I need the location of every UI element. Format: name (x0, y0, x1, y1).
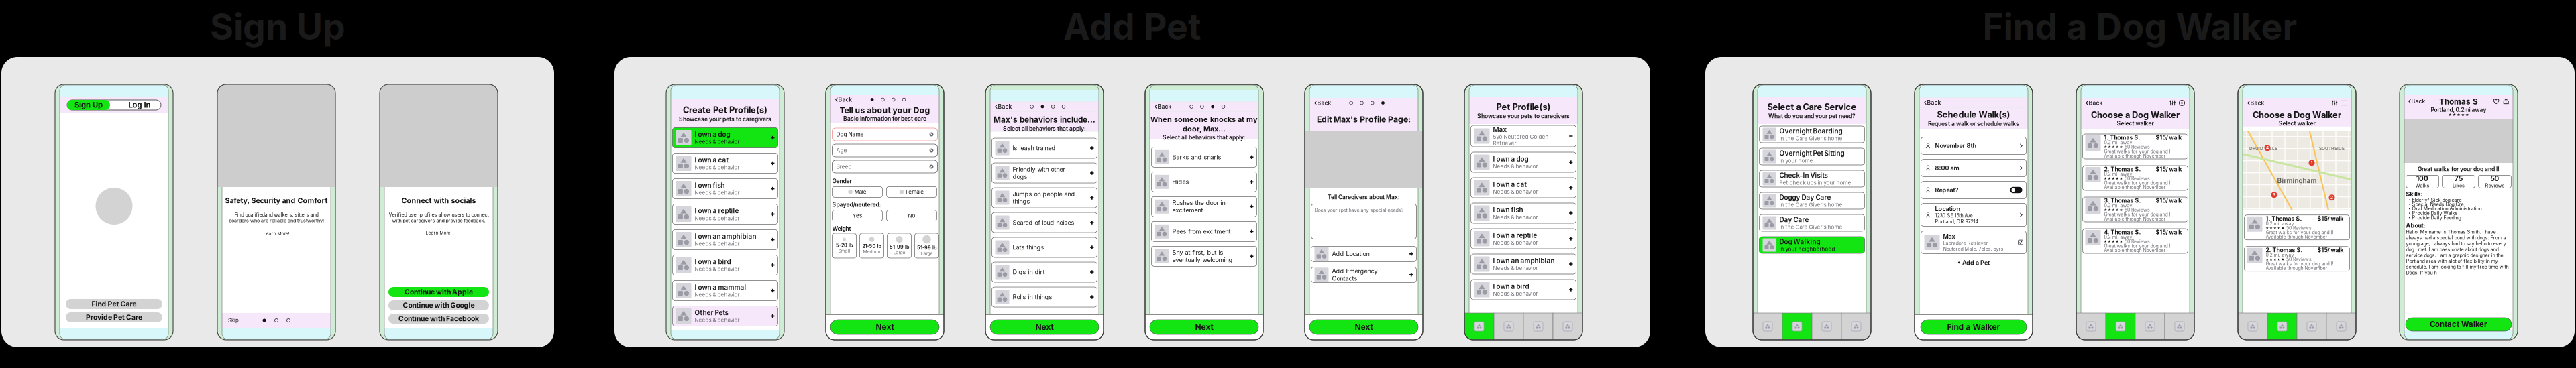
button[interactable]: Location (1921, 203, 2026, 226)
button[interactable]: November 8th (1921, 137, 2026, 155)
button[interactable]: Overnight Boarding (1759, 126, 1865, 143)
button[interactable]: Skip (228, 316, 244, 324)
button[interactable]: 3. Thomas S. (2083, 197, 2188, 222)
button[interactable]: 21-50 lb (860, 233, 884, 258)
button[interactable]: Tab 4 (1841, 313, 1871, 340)
button[interactable]: Filters (2332, 100, 2337, 106)
button[interactable]: Other Pets (673, 306, 778, 326)
button[interactable]: 1. Thomas S. (2083, 134, 2188, 159)
button[interactable]: Find a Walker (1921, 320, 2027, 334)
button[interactable]: I own a reptile (1471, 229, 1576, 249)
button[interactable]: Overnight Pet Sitting (1759, 148, 1865, 165)
button[interactable]: Eats things (992, 237, 1097, 257)
button[interactable]: Map view (2179, 100, 2185, 106)
button[interactable]: Find Pet Care (66, 299, 162, 309)
button[interactable]: 8:00 am (1921, 159, 2026, 177)
button[interactable]: I own a dog (673, 128, 778, 148)
button[interactable]: 5-20 lb (832, 233, 856, 258)
button[interactable]: Female (887, 187, 937, 197)
button[interactable]: Tab 2 (1494, 313, 1523, 340)
button[interactable]: Filters (2170, 100, 2176, 106)
button[interactable]: List view (2341, 100, 2347, 106)
button[interactable]: 2. Thomas S. (2244, 247, 2350, 271)
button[interactable]: Next (990, 320, 1099, 334)
button[interactable]: Tab 3 (2297, 313, 2326, 340)
button[interactable]: Back (1924, 99, 1941, 106)
button[interactable]: Back (995, 103, 1012, 110)
button[interactable]: Back (2408, 98, 2425, 105)
button[interactable]: Hides (1151, 172, 1257, 192)
button[interactable]: Tab 2 (2267, 313, 2297, 340)
button[interactable]: Tab 4 (2165, 313, 2194, 340)
button[interactable]: Continue with Google (388, 300, 489, 310)
button[interactable]: Back (835, 96, 852, 103)
button[interactable]: Doggy Day Care (1759, 192, 1865, 209)
button[interactable]: 51-99 lb (915, 233, 939, 258)
button[interactable]: Next (1150, 320, 1258, 334)
button[interactable]: 1. Thomas S. (2244, 215, 2350, 240)
button[interactable]: I own a dog (1471, 152, 1576, 172)
button[interactable]: Day Care (1759, 214, 1865, 231)
button[interactable]: Jumps on people and (992, 188, 1097, 208)
button[interactable]: Add Location (1311, 246, 1416, 262)
button[interactable]: Dog Walking (1759, 237, 1865, 253)
button[interactable]: Tab 4 (2326, 313, 2356, 340)
button[interactable]: Tab 4 (1553, 313, 1582, 340)
button[interactable]: Breed (832, 160, 937, 173)
button[interactable]: Contact Walker (2406, 318, 2512, 331)
button[interactable]: I own fish (673, 179, 778, 199)
button[interactable]: I own a mammal (673, 281, 778, 301)
button[interactable]: I own an amphibian (673, 230, 778, 250)
button[interactable]: Add Emergency (1311, 267, 1416, 282)
button[interactable]: 4. Thomas S. (2083, 229, 2188, 253)
button[interactable]: Share (2503, 98, 2509, 104)
button[interactable]: Tab 3 (2135, 313, 2165, 340)
button[interactable]: Age (832, 144, 937, 157)
button[interactable]: Sign Up (67, 100, 110, 110)
button[interactable]: Tab 1 (1464, 313, 1494, 340)
button[interactable]: Tab 3 (1523, 313, 1553, 340)
button[interactable]: Back (2247, 99, 2264, 107)
button[interactable]: Continue with Apple (388, 287, 489, 297)
button[interactable]: I own fish (1471, 203, 1576, 223)
button[interactable]: Max (1471, 125, 1576, 147)
button[interactable]: Learn More! (426, 223, 452, 236)
button[interactable]: I own a reptile (673, 204, 778, 224)
button[interactable]: Check-In Visits (1759, 170, 1865, 187)
button[interactable]: 2. Thomas S. (2083, 166, 2188, 190)
button[interactable]: Friendly with other (992, 163, 1097, 183)
button[interactable]: Back (1155, 103, 1172, 110)
button[interactable]: Next (830, 320, 939, 334)
button[interactable]: Tab 2 (2106, 313, 2135, 340)
button[interactable]: Tab 3 (1812, 313, 1841, 340)
button[interactable]: I own a bird (673, 255, 778, 275)
button[interactable]: Digs in dirt (992, 262, 1097, 282)
button[interactable]: Dog Name (832, 128, 937, 141)
button[interactable]: Repeat? (1921, 181, 2026, 199)
button[interactable]: Provide Pet Care (66, 312, 162, 322)
button[interactable]: Is leash trained (992, 138, 1097, 158)
button[interactable]: Next (1309, 320, 1418, 334)
button[interactable]: Shy at first, but is (1151, 246, 1257, 266)
button[interactable]: Yes (832, 210, 882, 221)
button[interactable]: Tab 2 (1782, 313, 1812, 340)
button[interactable]: Tab 1 (2238, 313, 2267, 340)
button[interactable]: Log In (118, 100, 161, 110)
button[interactable]: Back (2086, 99, 2103, 107)
button[interactable]: I own an amphibian (1471, 254, 1576, 274)
button[interactable]: Male (832, 187, 882, 197)
button[interactable]: Learn More! (263, 223, 289, 236)
button[interactable]: 51-99 lb (887, 233, 911, 258)
button[interactable]: Barks and snarls (1151, 147, 1257, 167)
button[interactable]: Favorite (2493, 98, 2499, 104)
button[interactable]: Pees from excitment (1151, 221, 1257, 242)
button[interactable]: Tab 1 (2076, 313, 2106, 340)
button[interactable]: Back (1314, 99, 1331, 107)
button[interactable]: Scared of loud noises (992, 212, 1097, 233)
button[interactable]: Max (1921, 231, 2026, 254)
button[interactable]: Rushes the door in (1151, 197, 1257, 217)
button[interactable]: I own a bird (1471, 280, 1576, 300)
button[interactable]: I own a cat (1471, 178, 1576, 198)
button[interactable]: I own a cat (673, 153, 778, 173)
button[interactable]: Rolls in things (992, 287, 1097, 307)
